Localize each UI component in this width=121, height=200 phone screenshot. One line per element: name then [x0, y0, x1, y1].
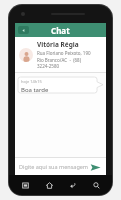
button[interactable]: Vitória Régia	[15, 37, 106, 72]
staticText: Rio Branco/AC - (68) 3224-2580	[37, 57, 102, 69]
button[interactable]: Send	[88, 160, 102, 174]
staticText: Digite aqui sua mensagem	[19, 163, 88, 170]
button[interactable]: Recent apps	[17, 177, 33, 193]
button[interactable]: Back	[18, 26, 29, 34]
staticText: Chat	[51, 25, 70, 36]
button[interactable]: Digite aqui sua mensagem	[19, 163, 88, 170]
staticText: Boa tarde	[21, 86, 49, 94]
staticText: Vitória Régia	[37, 40, 79, 49]
staticText: Rua Floriano Peixoto, 190	[37, 50, 91, 56]
button[interactable]: hoje 14h15	[18, 77, 103, 94]
button[interactable]: Search	[88, 177, 104, 193]
button[interactable]: Back	[64, 177, 80, 193]
staticText: hoje 14h15	[21, 79, 42, 84]
button[interactable]: Home	[41, 177, 57, 193]
